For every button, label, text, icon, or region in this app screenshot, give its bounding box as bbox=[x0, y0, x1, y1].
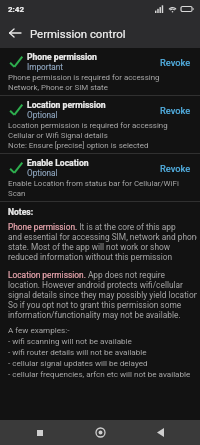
staticText: Phone permission bbox=[27, 52, 97, 62]
staticText: Enable Location from status bar for Cell… bbox=[8, 179, 179, 198]
button[interactable]: Home bbox=[80, 420, 120, 445]
button[interactable]: Enable Location bbox=[0, 154, 200, 201]
staticText: Phone permission is required for accessi… bbox=[8, 73, 160, 92]
staticText: Location permission is required for acce… bbox=[8, 121, 168, 150]
staticText: Important bbox=[27, 62, 63, 72]
button[interactable]: Back bbox=[140, 420, 180, 445]
staticText: Notes: bbox=[8, 207, 34, 217]
button[interactable]: Recents bbox=[20, 420, 60, 445]
button[interactable]: Location permission bbox=[0, 96, 200, 153]
staticText: Permission control bbox=[30, 27, 126, 40]
button[interactable]: Back bbox=[0, 18, 30, 48]
button[interactable]: Revoke bbox=[151, 54, 200, 71]
staticText: Optional bbox=[27, 110, 58, 120]
staticText: Location permission bbox=[27, 100, 106, 110]
staticText: Revoke bbox=[160, 105, 191, 116]
staticText: Revoke bbox=[160, 163, 191, 174]
staticText: Optional bbox=[27, 168, 58, 178]
staticText: 2:42 bbox=[8, 5, 25, 14]
staticText: Location permission. App does not requir… bbox=[8, 270, 197, 320]
staticText: Revoke bbox=[160, 57, 191, 68]
staticText: Enable Location bbox=[27, 158, 89, 168]
button[interactable]: Revoke bbox=[151, 160, 200, 177]
staticText: Phone permission. It is at the core of t… bbox=[8, 222, 197, 262]
staticText: A few examples:- - wifi scanning will no… bbox=[8, 325, 191, 379]
button[interactable]: Revoke bbox=[151, 102, 200, 119]
button[interactable]: Phone permission bbox=[0, 48, 200, 95]
